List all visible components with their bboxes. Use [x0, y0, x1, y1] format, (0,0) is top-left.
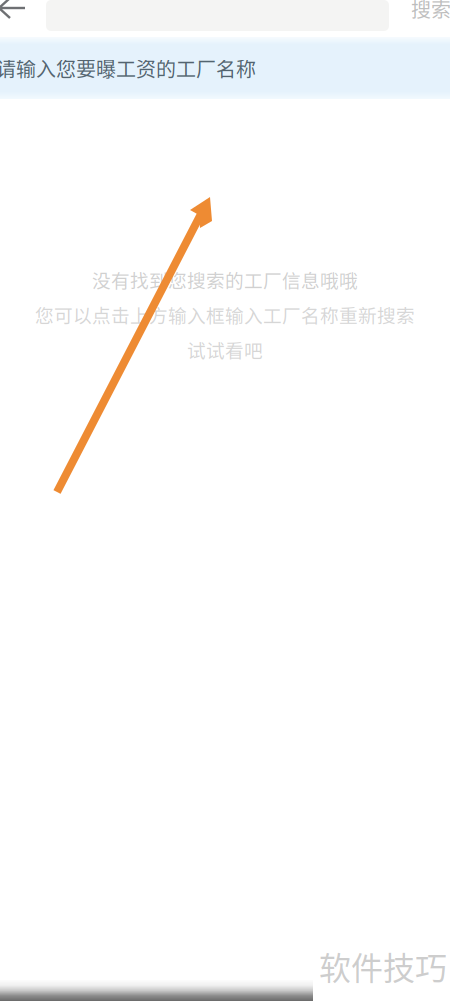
button[interactable]: 搜索	[389, 1, 450, 30]
staticText: 试试看吧	[187, 336, 263, 363]
staticText: 软件技巧	[319, 943, 447, 989]
button[interactable]: Back	[0, 0, 46, 31]
staticText: 请输入您要曝工资的工厂名称	[0, 53, 256, 82]
staticText: 没有找到您搜索的工厂信息哦哦	[92, 266, 358, 293]
staticText: 您可以点击上方输入框输入工厂名称重新搜索	[35, 301, 415, 328]
staticText: 搜索	[411, 0, 450, 23]
